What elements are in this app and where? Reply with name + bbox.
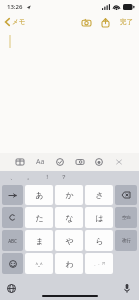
button[interactable]: か xyxy=(55,185,83,205)
button[interactable]: メモ xyxy=(3,16,28,28)
staticText: な xyxy=(65,213,74,223)
button[interactable]: Checklist xyxy=(54,156,66,168)
staticText: 13:26 xyxy=(7,3,23,11)
staticText: 空白 xyxy=(122,215,131,221)
staticText: わ xyxy=(65,259,74,269)
button[interactable]: ^_^ xyxy=(25,253,53,274)
button[interactable]: 。 xyxy=(21,171,38,183)
button[interactable]: 、 xyxy=(4,171,21,183)
staticText: 、。?! xyxy=(94,261,105,266)
staticText: 、 xyxy=(10,173,16,181)
button[interactable]: 改行 xyxy=(115,230,137,251)
button[interactable]: 、。?! xyxy=(85,253,113,274)
staticText: ！ xyxy=(44,173,50,181)
staticText: ^_^ xyxy=(35,261,43,267)
staticText: は xyxy=(95,213,104,223)
button[interactable]: ら xyxy=(85,230,113,251)
button[interactable]: Change keyboard xyxy=(5,282,17,294)
button[interactable]: Dictation xyxy=(121,282,133,294)
button[interactable] xyxy=(2,207,23,228)
button[interactable] xyxy=(2,185,23,205)
button[interactable]: た xyxy=(25,207,53,228)
button[interactable]: や xyxy=(55,230,83,251)
button[interactable]: な xyxy=(55,207,83,228)
button[interactable]: 完了 xyxy=(119,16,134,28)
button[interactable]: 空白 xyxy=(115,207,137,228)
staticText: ま xyxy=(35,236,44,246)
button[interactable]: ABC xyxy=(2,230,23,251)
staticText: や xyxy=(65,236,74,246)
button[interactable]: Camera xyxy=(81,17,91,27)
staticText: 完了 xyxy=(120,18,133,26)
staticText: 。 xyxy=(27,173,33,181)
staticText: た xyxy=(35,213,44,223)
button[interactable]: さ xyxy=(85,185,113,205)
button[interactable]: Markup xyxy=(93,156,105,168)
button[interactable]: Close xyxy=(113,156,125,168)
button[interactable] xyxy=(2,253,23,274)
staticText: ABC xyxy=(8,238,17,244)
button[interactable]: わ xyxy=(55,253,83,274)
staticText: あ xyxy=(35,190,44,200)
staticText: Aa xyxy=(36,157,45,167)
button[interactable]: あ xyxy=(25,185,53,205)
button[interactable]: Share xyxy=(100,17,110,27)
staticText: ら xyxy=(95,236,104,246)
button[interactable]: Aa xyxy=(34,155,47,169)
staticText: ？ xyxy=(61,173,67,181)
button[interactable]: ？ xyxy=(55,171,72,183)
staticText: さ xyxy=(95,190,104,200)
staticText: 改行 xyxy=(122,238,131,244)
staticText: か xyxy=(65,190,74,200)
button[interactable]: ！ xyxy=(38,171,55,183)
button[interactable]: Scan document xyxy=(74,156,86,168)
staticText: メモ xyxy=(12,18,26,26)
button[interactable]: は xyxy=(85,207,113,228)
button[interactable]: ま xyxy=(25,230,53,251)
button[interactable]: Table xyxy=(14,156,26,168)
button[interactable] xyxy=(115,185,137,205)
